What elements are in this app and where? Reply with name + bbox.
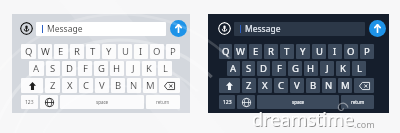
button[interactable]: Voice input: [20, 22, 33, 35]
staticText: S: [50, 62, 56, 75]
staticText: N: [130, 79, 138, 92]
button[interactable]: L: [352, 61, 366, 76]
button[interactable]: J: [126, 61, 140, 76]
button[interactable]: M: [143, 78, 157, 93]
button[interactable]: Change keyboard: [237, 95, 255, 109]
staticText: X: [67, 79, 73, 92]
button[interactable]: D: [62, 61, 76, 76]
button[interactable]: T: [280, 44, 294, 59]
staticText: 123: [223, 99, 232, 106]
staticText: G: [292, 62, 299, 75]
staticText: 123: [25, 99, 34, 106]
staticText: Message: [47, 23, 83, 35]
button[interactable]: H: [304, 61, 318, 76]
button[interactable]: Z: [45, 78, 60, 93]
staticText: Y: [300, 45, 306, 58]
staticText: H: [113, 62, 121, 75]
staticText: I: [139, 45, 143, 58]
staticText: Z: [50, 79, 56, 92]
button[interactable]: Z: [242, 78, 256, 93]
button[interactable]: N: [322, 78, 336, 93]
button[interactable]: K: [336, 61, 350, 76]
button[interactable]: K: [142, 61, 156, 76]
staticText: K: [146, 62, 152, 75]
staticText: W: [236, 45, 245, 58]
button[interactable]: O: [344, 44, 358, 59]
button[interactable]: P: [360, 44, 374, 59]
button[interactable]: S: [242, 61, 255, 76]
button[interactable]: Backspace: [159, 78, 180, 93]
staticText: F: [83, 62, 88, 75]
staticText: Message: [245, 23, 281, 35]
button[interactable]: E: [249, 44, 262, 59]
button[interactable]: R: [70, 44, 84, 59]
staticText: I: [333, 45, 337, 58]
staticText: O: [347, 45, 355, 58]
button[interactable]: Send: [170, 20, 187, 37]
button[interactable]: space: [257, 95, 339, 109]
button[interactable]: C: [274, 78, 288, 93]
button[interactable]: U: [118, 44, 132, 59]
button[interactable]: F: [78, 61, 92, 76]
button[interactable]: Message: [234, 22, 365, 36]
button[interactable]: R: [264, 44, 278, 59]
button[interactable]: Shift: [219, 78, 240, 93]
button[interactable]: T: [86, 44, 100, 59]
staticText: Q: [25, 45, 33, 58]
staticText: F: [277, 62, 282, 75]
button[interactable]: V: [95, 78, 109, 93]
staticText: return: [351, 99, 365, 105]
button[interactable]: return: [341, 95, 374, 109]
button[interactable]: I: [328, 44, 342, 59]
button[interactable]: G: [288, 61, 302, 76]
button[interactable]: I: [134, 44, 148, 59]
button[interactable]: Y: [102, 44, 116, 59]
staticText: M: [146, 79, 155, 92]
button[interactable]: Voice input: [218, 22, 231, 35]
button[interactable]: P: [166, 44, 180, 59]
button[interactable]: U: [312, 44, 326, 59]
button[interactable]: Change keyboard: [40, 95, 58, 109]
button[interactable]: B: [111, 78, 125, 93]
button[interactable]: C: [79, 78, 93, 93]
staticText: V: [294, 79, 300, 92]
staticText: X: [262, 79, 268, 92]
staticText: dreamstime: [252, 107, 354, 132]
button[interactable]: H: [110, 61, 124, 76]
button[interactable]: J: [320, 61, 334, 76]
button[interactable]: E: [54, 44, 68, 59]
button[interactable]: S: [46, 61, 60, 76]
button[interactable]: M: [338, 78, 352, 93]
staticText: K: [340, 62, 346, 75]
button[interactable]: G: [94, 61, 108, 76]
button[interactable]: B: [306, 78, 320, 93]
button[interactable]: N: [127, 78, 141, 93]
button[interactable]: F: [272, 61, 286, 76]
button[interactable]: Y: [296, 44, 310, 59]
staticText: M: [341, 79, 350, 92]
button[interactable]: V: [290, 78, 304, 93]
staticText: S: [246, 62, 252, 75]
button[interactable]: Shift: [21, 78, 43, 93]
button[interactable]: Backspace: [354, 78, 374, 93]
button[interactable]: A: [29, 61, 44, 76]
button[interactable]: Send: [369, 20, 386, 37]
button[interactable]: L: [158, 61, 172, 76]
button[interactable]: D: [257, 61, 270, 76]
button[interactable]: X: [258, 78, 272, 93]
button[interactable]: W: [234, 44, 247, 59]
button[interactable]: 123: [219, 95, 235, 109]
button[interactable]: O: [150, 44, 164, 59]
staticText: space: [292, 99, 305, 105]
button[interactable]: X: [62, 78, 77, 93]
button[interactable]: 123: [21, 95, 38, 109]
button[interactable]: return: [146, 95, 180, 109]
staticText: space: [96, 99, 109, 105]
button[interactable]: space: [60, 95, 144, 109]
button[interactable]: Message: [36, 22, 166, 36]
button[interactable]: Q: [219, 44, 232, 59]
button[interactable]: W: [38, 44, 52, 59]
staticText: E: [58, 45, 64, 58]
button[interactable]: A: [227, 61, 240, 76]
button[interactable]: Q: [21, 44, 36, 59]
